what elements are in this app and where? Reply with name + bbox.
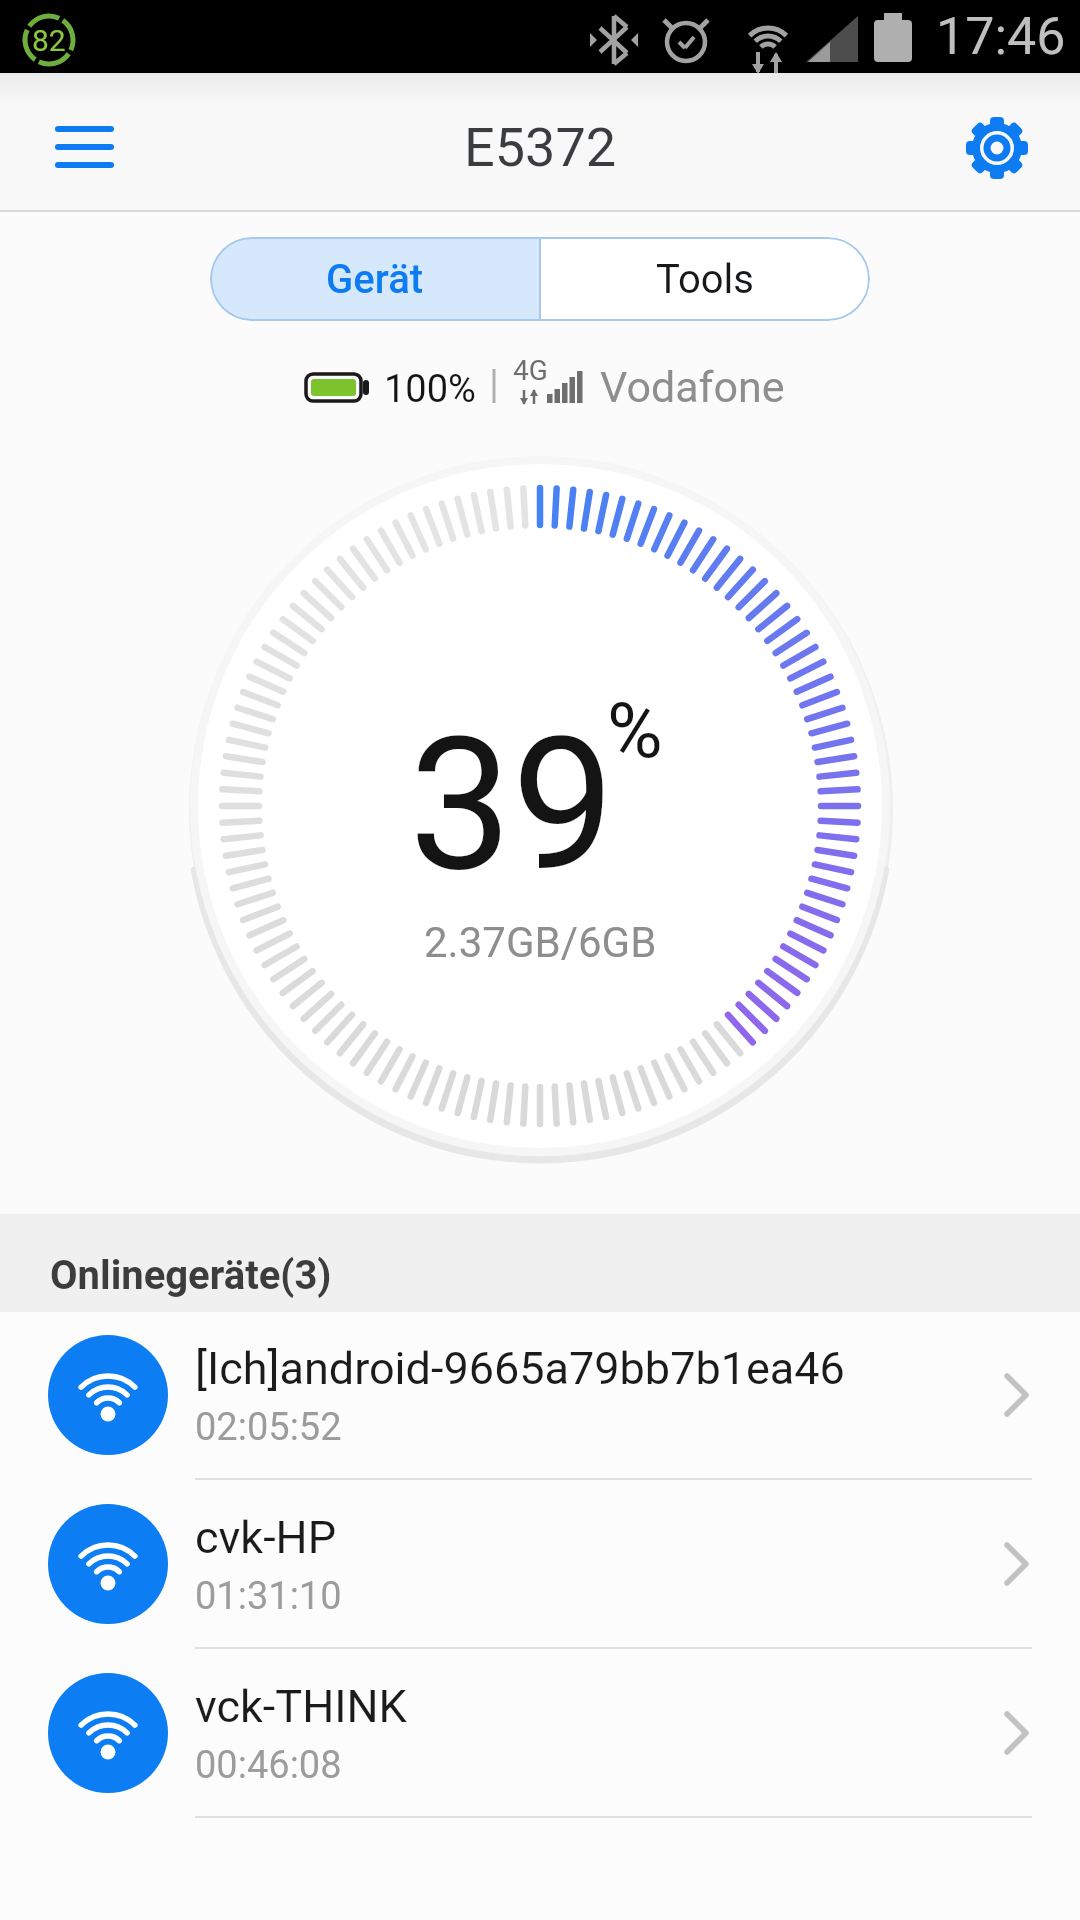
staticText: 100% [384,367,476,412]
staticText: 01:31:10 [195,1574,342,1619]
button[interactable]: [Ich]android-9665a79bb7b1ea46 [0,1312,1080,1479]
staticText: Vodafone [600,362,785,412]
staticText: 2.37GB/6GB [424,918,657,967]
button[interactable]: Tools [540,237,870,321]
staticText: 17:46 [936,6,1066,67]
staticText: Tools [656,256,754,303]
button[interactable] [957,108,1037,188]
staticText: % [607,686,663,775]
staticText: E5372 [464,116,617,179]
staticText: 4G [513,354,548,387]
staticText: 39 [409,698,615,912]
staticText: 02:05:52 [195,1405,342,1450]
staticText: 00:46:08 [195,1743,342,1788]
staticText: 82 [32,23,66,58]
staticText: Gerät [326,256,424,303]
button[interactable]: cvk-HP [0,1481,1080,1648]
button[interactable] [36,115,132,179]
staticText: Onlinegeräte(3) [50,1252,332,1299]
staticText: [Ich]android-9665a79bb7b1ea46 [195,1342,845,1395]
button[interactable]: vck-THINK [0,1650,1080,1817]
staticText: cvk-HP [195,1511,337,1564]
button[interactable]: Gerät [210,237,540,321]
staticText: vck-THINK [195,1680,407,1733]
